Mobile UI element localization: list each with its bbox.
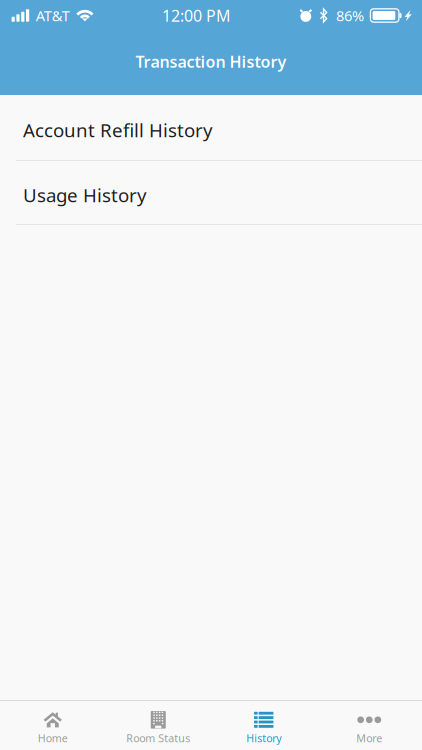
button[interactable]: History [211, 701, 316, 750]
staticText: AT&T [36, 6, 70, 25]
staticText: More [356, 731, 382, 745]
staticText: 12:00 PM [162, 5, 231, 26]
staticText: Transaction History [135, 51, 286, 72]
staticText: Room Status [126, 731, 190, 745]
staticText: Usage History [23, 183, 147, 207]
staticText: 86% [336, 6, 364, 25]
staticText: Home [38, 731, 68, 745]
button[interactable]: Usage History [0, 161, 422, 225]
staticText: History [246, 731, 281, 745]
button[interactable]: Home [0, 701, 105, 750]
staticText: Account Refill History [23, 118, 213, 142]
button[interactable]: Room Status [105, 701, 211, 750]
button[interactable]: Account Refill History [0, 95, 422, 161]
button[interactable]: More [316, 701, 422, 750]
